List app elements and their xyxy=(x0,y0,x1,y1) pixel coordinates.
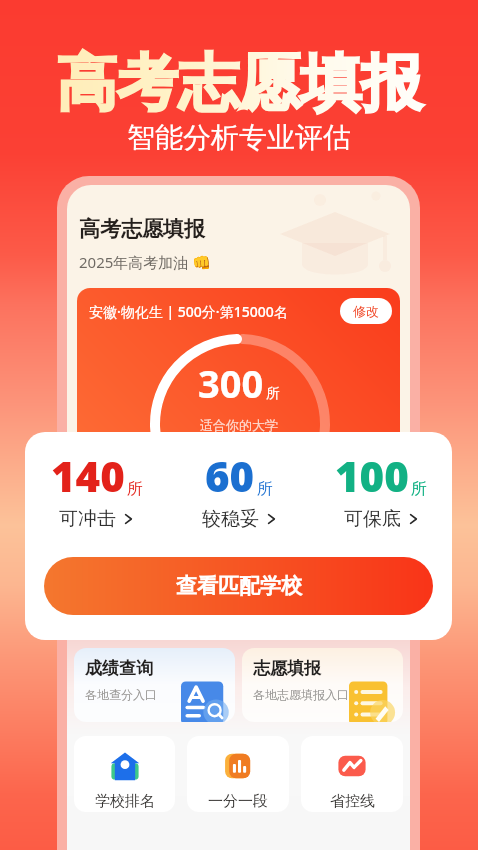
staticText: 学校排名 xyxy=(95,792,155,811)
staticText: 可冲击 xyxy=(59,507,116,531)
staticText: 140 xyxy=(51,447,125,504)
staticText: 各地志愿填报入口 xyxy=(253,687,349,702)
staticText: 成绩查询 xyxy=(85,658,153,679)
staticText: 所 xyxy=(266,385,280,403)
button[interactable]: 成绩查询 xyxy=(74,648,235,722)
staticText: 查看匹配学校 xyxy=(176,573,302,599)
staticText: 一分一段 xyxy=(208,792,268,811)
staticText: 300 xyxy=(198,357,264,409)
staticText: 100 xyxy=(335,447,409,504)
staticText: 2025年高考加油 👊 xyxy=(79,252,211,272)
staticText: 修改 xyxy=(353,303,379,319)
staticText: 高考志愿填报 xyxy=(79,216,205,242)
button[interactable]: 修改 xyxy=(340,298,392,324)
staticText: 所 xyxy=(411,479,427,499)
staticText: 所 xyxy=(127,479,143,499)
button[interactable]: 一分一段 xyxy=(187,736,289,812)
button[interactable]: 学校排名 xyxy=(74,736,175,812)
staticText: 60 xyxy=(205,447,255,504)
staticText: 各地查分入口 xyxy=(85,687,157,702)
staticText: 安徽·物化生 | 500分·第15000名 xyxy=(89,302,288,321)
button[interactable]: 140 xyxy=(25,447,168,531)
staticText: 可保底 xyxy=(344,507,401,531)
button[interactable]: 60 xyxy=(168,447,310,531)
staticText: 所 xyxy=(257,479,273,499)
staticText: 志愿填报 xyxy=(253,658,321,679)
staticText: 智能分析专业评估 xyxy=(127,120,351,155)
staticText: 适合你的大学 xyxy=(200,417,278,433)
button[interactable]: 100 xyxy=(310,447,452,531)
staticText: 高考志愿填报 xyxy=(56,45,422,122)
button[interactable]: 省控线 xyxy=(301,736,403,812)
staticText: 省控线 xyxy=(330,792,375,811)
staticText: 较稳妥 xyxy=(202,507,259,531)
button[interactable]: 志愿填报 xyxy=(242,648,403,722)
button[interactable]: 查看匹配学校 xyxy=(44,557,433,615)
